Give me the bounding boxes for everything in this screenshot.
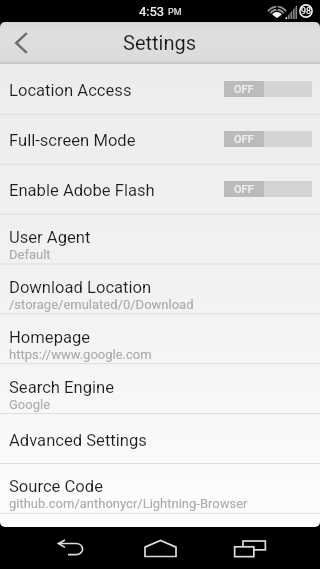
button[interactable]: Advanced Settings xyxy=(0,414,320,464)
button[interactable]: Download Location xyxy=(0,264,320,314)
button[interactable]: User Agent xyxy=(0,214,320,264)
button[interactable]: Source Code xyxy=(0,464,320,513)
staticText: OFF xyxy=(234,133,254,146)
button[interactable]: Homepage xyxy=(0,314,320,364)
staticText: 98 xyxy=(301,6,312,17)
staticText: https://www.google.com xyxy=(9,347,152,362)
button[interactable]: Search Engine xyxy=(0,364,320,414)
staticText: Google xyxy=(9,397,51,412)
staticText: Source Code xyxy=(9,477,103,496)
staticText: Default xyxy=(9,247,51,262)
staticText: 4:53 xyxy=(139,4,165,19)
button[interactable]: Location Access xyxy=(0,64,320,114)
button[interactable]: Full-screen Mode xyxy=(0,114,320,164)
staticText: Location Access xyxy=(9,81,132,100)
button[interactable]: Recent apps xyxy=(232,527,268,569)
staticText: OFF xyxy=(234,183,254,196)
staticText: Advanced Settings xyxy=(9,431,147,450)
staticText: Enable Adobe Flash xyxy=(9,181,155,200)
staticText: Homepage xyxy=(9,328,91,347)
staticText: Download Location xyxy=(9,278,152,297)
staticText: OFF xyxy=(234,83,254,96)
staticText: User Agent xyxy=(9,228,91,247)
staticText: Full-screen Mode xyxy=(9,131,136,150)
button[interactable]: Home xyxy=(142,527,178,569)
staticText: /storage/emulated/0/Download xyxy=(9,297,194,312)
staticText: PM xyxy=(168,7,182,18)
button[interactable]: Navigate up xyxy=(0,22,43,64)
staticText: Search Engine xyxy=(9,378,114,397)
staticText: Settings xyxy=(123,31,197,54)
staticText: github.com/anthonycr/Lightning-Browser xyxy=(9,496,248,511)
button[interactable]: Back xyxy=(53,527,89,569)
button[interactable]: Enable Adobe Flash xyxy=(0,164,320,214)
